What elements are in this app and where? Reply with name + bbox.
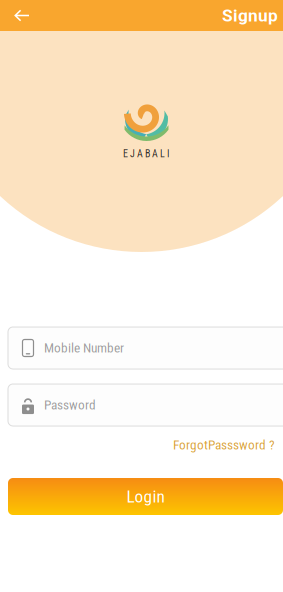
staticText: ForgotPasssword ? bbox=[173, 437, 275, 453]
staticText: Signup bbox=[222, 5, 278, 26]
staticText: Password bbox=[44, 397, 96, 413]
button[interactable]: Login bbox=[8, 478, 283, 515]
button[interactable]: Back bbox=[0, 0, 40, 31]
button[interactable]: Signup bbox=[222, 0, 283, 31]
button[interactable]: ForgotPasssword ? bbox=[0, 437, 275, 453]
staticText: Login bbox=[126, 486, 164, 507]
staticText: E J A B A L I bbox=[123, 148, 170, 160]
staticText: Mobile Number bbox=[44, 340, 124, 356]
